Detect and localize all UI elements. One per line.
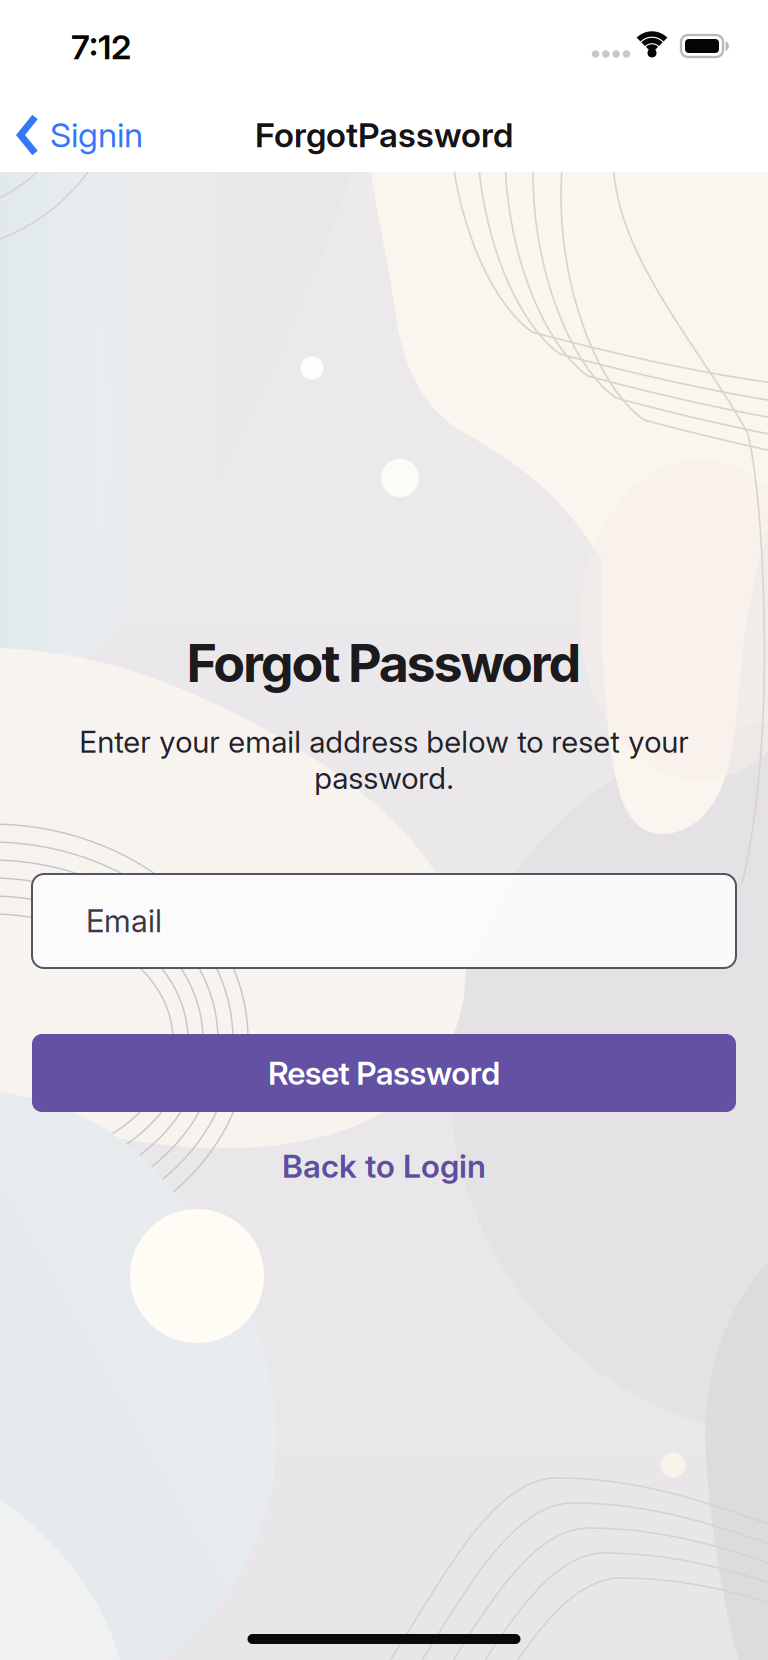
staticText: ForgotPassword bbox=[255, 114, 513, 155]
button[interactable]: Email bbox=[32, 874, 736, 968]
staticText: Email bbox=[86, 902, 162, 940]
staticText: Back to Login bbox=[282, 1147, 486, 1185]
staticText: Forgot Password bbox=[186, 631, 582, 694]
staticText: Signin bbox=[50, 114, 143, 155]
button[interactable]: Back to Login bbox=[282, 1147, 486, 1185]
staticText: Reset Password bbox=[268, 1054, 500, 1092]
staticText: Enter your email address below to reset … bbox=[79, 724, 689, 796]
staticText: 7:12 bbox=[71, 26, 131, 67]
button[interactable]: Reset Password bbox=[32, 1034, 736, 1112]
button[interactable]: Signin bbox=[17, 114, 143, 156]
